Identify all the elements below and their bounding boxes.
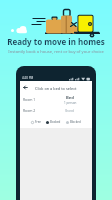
staticText: Instantly book a house, rent or buy of y…	[0, 49, 112, 55]
staticText: Booked	[50, 120, 61, 124]
button[interactable]: Free	[31, 120, 41, 124]
staticText: Shared	[65, 109, 75, 113]
staticText: Click on a bed to select	[35, 86, 77, 91]
staticText: Ready to move in homes	[0, 36, 112, 47]
button[interactable]: Booked	[46, 120, 61, 124]
staticText: Blocked	[70, 120, 81, 124]
button[interactable]: Back	[20, 81, 30, 93]
staticText: Room 2	[23, 108, 36, 113]
staticText: Room 1	[23, 97, 36, 102]
staticText: 4:20 PM	[22, 76, 34, 80]
button[interactable]: Blocked	[66, 120, 81, 124]
button[interactable]: Back	[20, 81, 92, 93]
staticText: 1 person	[64, 101, 77, 105]
staticText: Bed	[66, 95, 74, 101]
staticText: Free	[35, 120, 41, 124]
